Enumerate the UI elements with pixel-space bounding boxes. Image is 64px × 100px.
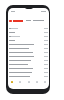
button[interactable]: [9, 30, 48, 34]
button[interactable]: Search: [16, 79, 24, 84]
button[interactable]: Inbox: [33, 79, 41, 84]
button[interactable]: [9, 54, 48, 58]
button[interactable]: [9, 70, 48, 74]
button[interactable]: App header: [9, 19, 47, 22]
button[interactable]: Profile: [41, 79, 49, 84]
button[interactable]: Home: [8, 79, 16, 84]
button[interactable]: [9, 34, 48, 38]
button[interactable]: [9, 58, 48, 62]
button[interactable]: [9, 38, 48, 42]
button[interactable]: [9, 42, 48, 46]
button[interactable]: [9, 62, 48, 66]
button[interactable]: [9, 26, 48, 30]
button[interactable]: [9, 50, 48, 54]
button[interactable]: [9, 66, 48, 70]
button[interactable]: [9, 46, 48, 50]
button[interactable]: Explore: [25, 79, 33, 84]
button[interactable]: [9, 74, 48, 78]
